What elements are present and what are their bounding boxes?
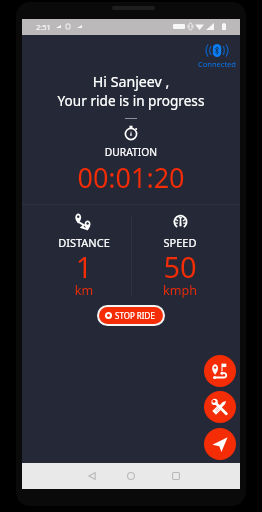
- staticText: 50: [135, 247, 225, 286]
- staticText: SPEED: [135, 235, 225, 250]
- staticText: STOP RIDE: [115, 310, 155, 321]
- button[interactable]: Navigate: [204, 428, 236, 460]
- staticText: DISTANCE: [39, 235, 129, 250]
- button[interactable]: Directions: [204, 355, 236, 387]
- staticText: Connected: [198, 59, 236, 69]
- button[interactable]: Back: [79, 463, 105, 489]
- button[interactable]: Service: [204, 391, 236, 423]
- staticText: Hi Sanjeev ,: [22, 72, 240, 91]
- button[interactable]: Home: [118, 463, 144, 489]
- staticText: kmph: [135, 282, 225, 299]
- staticText: 2:51: [36, 22, 51, 32]
- button[interactable]: Connected: [195, 43, 239, 69]
- button[interactable]: STOP RIDE: [99, 307, 163, 324]
- staticText: 1: [39, 247, 129, 286]
- staticText: DURATION: [22, 145, 240, 159]
- button[interactable]: Recent apps: [163, 463, 189, 489]
- staticText: 00:01:20: [22, 159, 240, 196]
- staticText: Your ride is in progress: [22, 91, 240, 110]
- staticText: km: [39, 282, 129, 299]
